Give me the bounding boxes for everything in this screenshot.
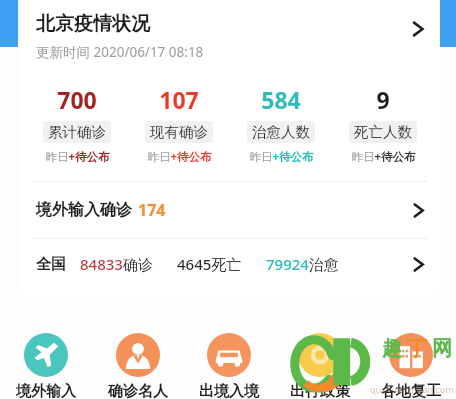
- button[interactable]: 全国: [20, 239, 440, 289]
- button[interactable]: 各地复工: [365, 331, 456, 399]
- staticText: 9: [376, 84, 390, 115]
- button[interactable]: 584: [230, 82, 332, 167]
- staticText: 700: [57, 84, 97, 115]
- staticText: 境外输入: [16, 382, 76, 399]
- staticText: 死亡人数: [354, 123, 412, 141]
- staticText: 网: [432, 336, 452, 361]
- button[interactable]: 700: [26, 82, 128, 167]
- staticText: 更新时间 2020/06/17 08:18: [36, 43, 204, 61]
- staticText: 昨日+待公布: [45, 149, 110, 165]
- staticText: 107: [159, 84, 199, 115]
- staticText: 84833确诊: [80, 254, 153, 274]
- staticText: 出境入境: [199, 382, 259, 399]
- staticText: 各地复工: [381, 382, 441, 399]
- button[interactable]: 9: [332, 82, 434, 167]
- staticText: 全国: [36, 255, 66, 274]
- button[interactable]: 境外输入确诊: [20, 182, 440, 238]
- button[interactable]: 107: [128, 82, 230, 167]
- button[interactable]: 确诊名人: [92, 331, 183, 399]
- staticText: 丁: [407, 336, 427, 361]
- staticText: 治愈人数: [252, 123, 310, 141]
- staticText: 昨日+待公布: [147, 149, 212, 165]
- staticText: 79924治愈: [266, 254, 339, 274]
- staticText: 境外输入确诊: [36, 200, 132, 220]
- staticText: 174: [138, 199, 166, 221]
- button[interactable]: 出境入境: [183, 331, 274, 399]
- staticText: 昨日+待公布: [351, 149, 416, 165]
- button[interactable]: 出行政策: [274, 331, 365, 399]
- staticText: 北京疫情状况: [36, 12, 150, 36]
- button[interactable]: 北京疫情状况: [20, 0, 440, 72]
- staticText: 现有确诊: [150, 123, 208, 141]
- staticText: 584: [261, 84, 301, 115]
- staticText: 确诊名人: [108, 382, 168, 399]
- staticText: 趣: [382, 336, 402, 361]
- staticText: 出行政策: [290, 382, 350, 399]
- staticText: 累计确诊: [48, 123, 106, 141]
- staticText: 昨日+待公布: [249, 149, 314, 165]
- button[interactable]: 境外输入: [0, 331, 92, 399]
- staticText: quzhuanzhuan.com: [370, 383, 454, 395]
- staticText: 4645死亡: [177, 254, 242, 274]
